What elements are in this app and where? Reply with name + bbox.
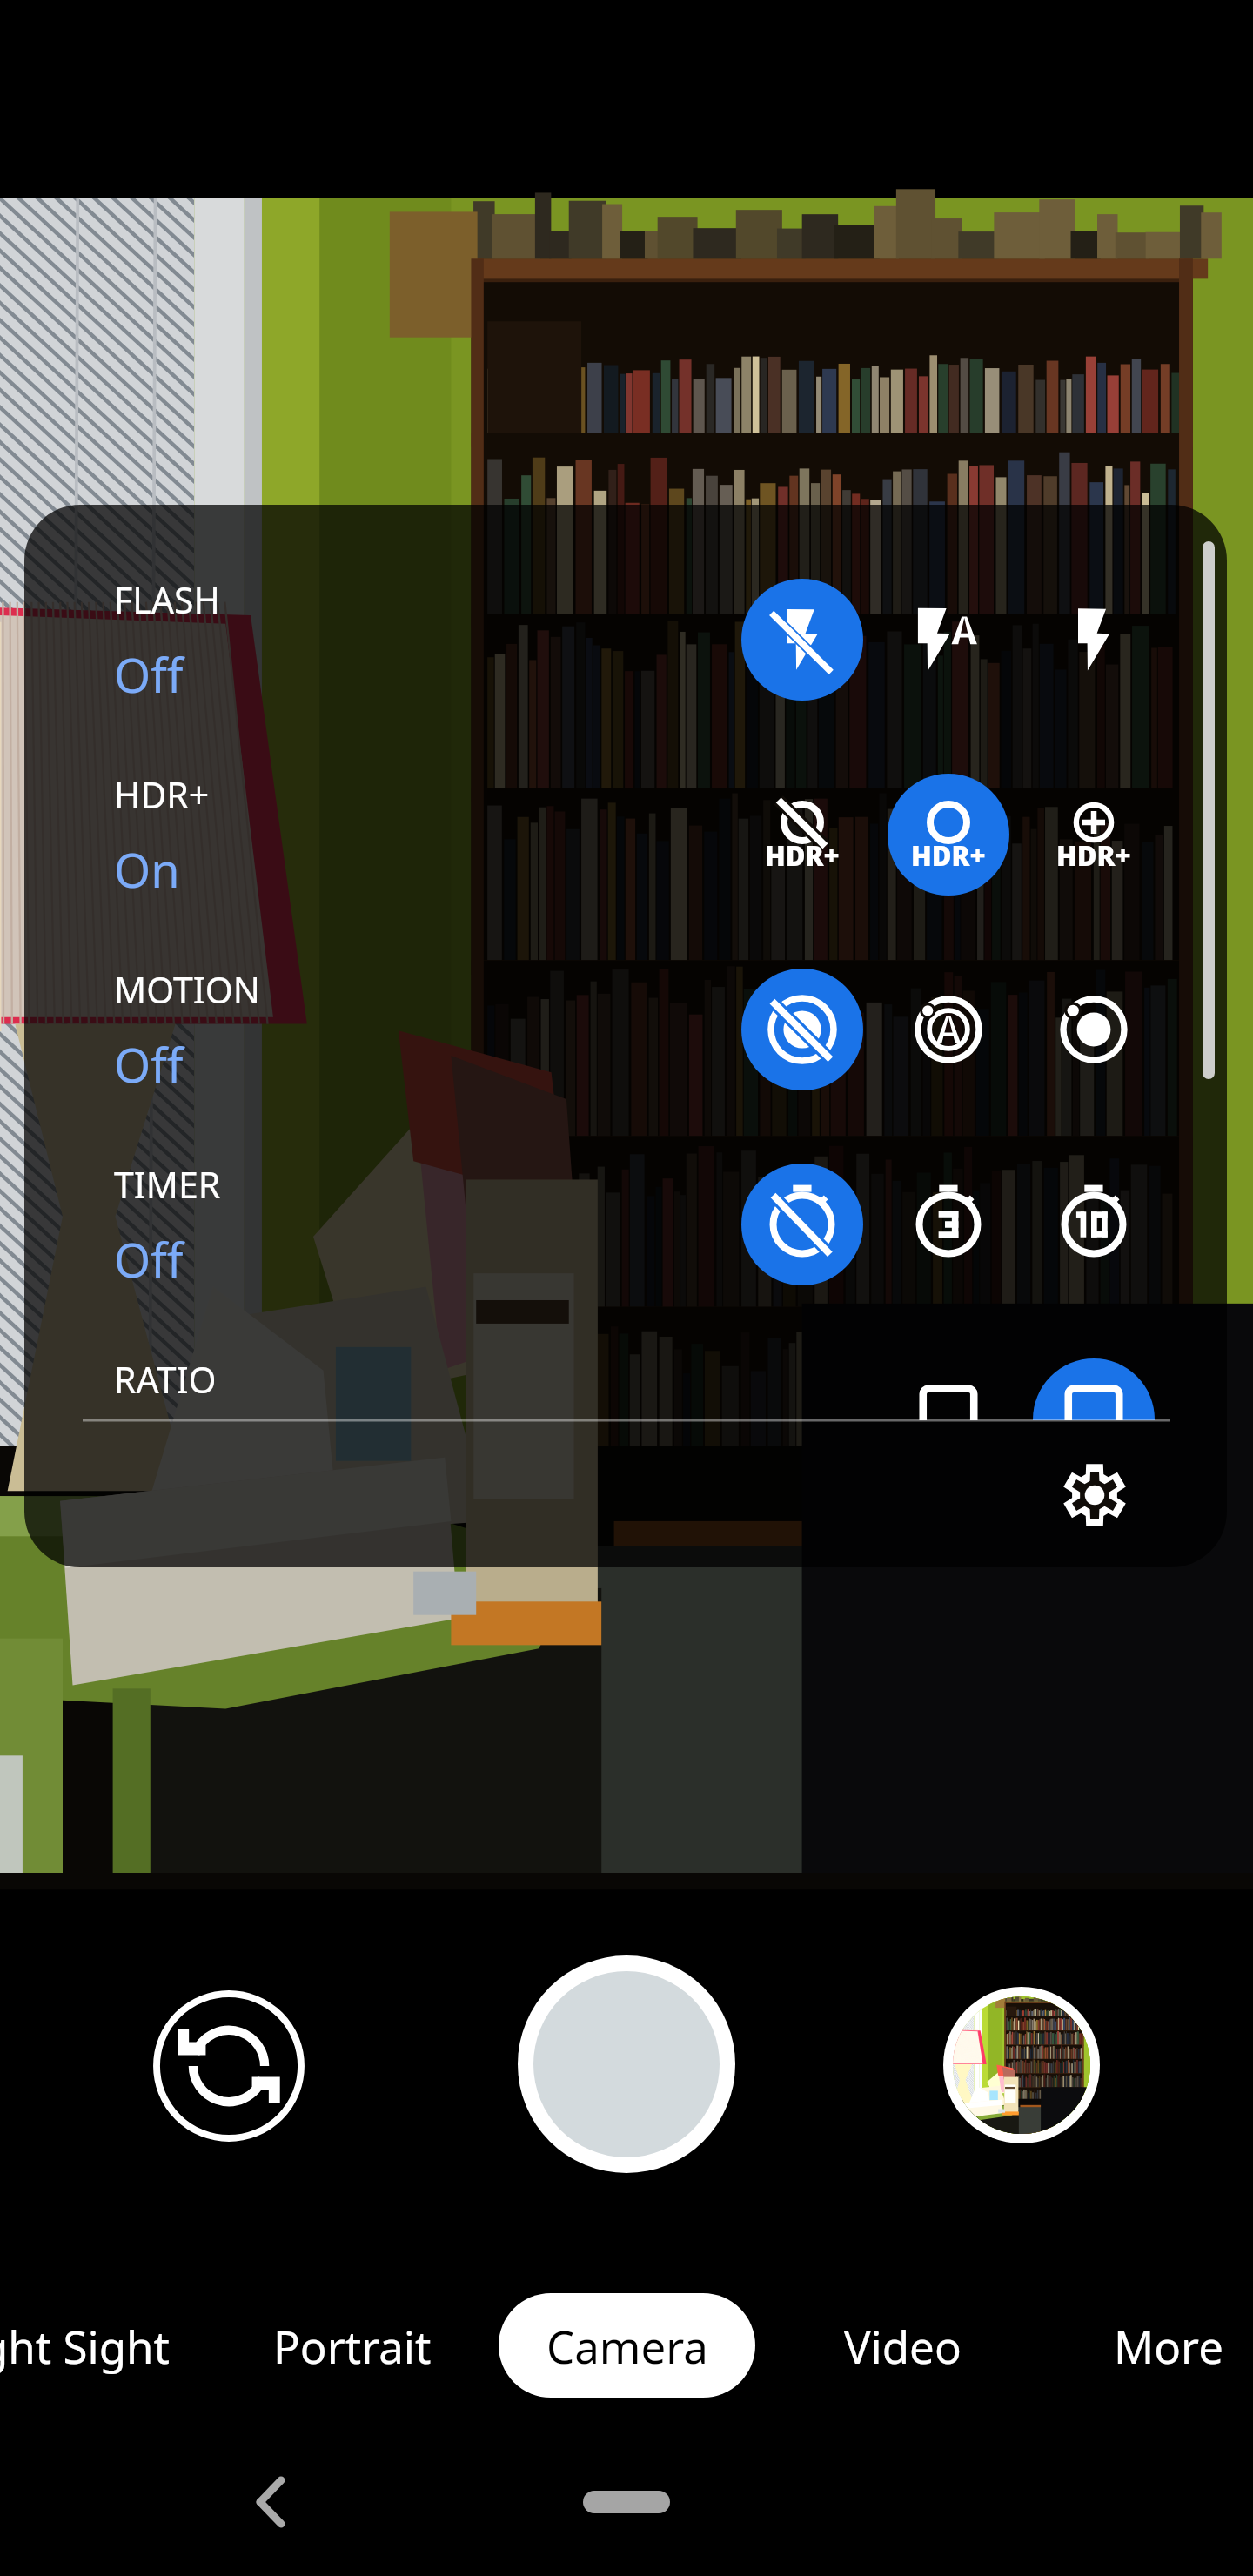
button[interactable]: Portrait [244,2293,461,2398]
staticText: HDR+ [911,837,986,874]
staticText: RATIO [114,1355,217,1404]
staticText: FLASH [114,575,220,624]
button[interactable]: Back [218,2450,322,2554]
button[interactable]: Home [583,2491,670,2513]
staticText: Portrait [273,2316,432,2376]
staticText: MOTION [114,965,260,1014]
button[interactable]: Gallery [943,1987,1100,2143]
button[interactable]: Switch camera [152,1989,305,2143]
staticText: Night Sight [0,2316,170,2376]
staticText: TIMER [114,1160,221,1209]
staticText: Off [114,1032,184,1097]
staticText: HDR+ [765,837,840,874]
button[interactable]: Night Sight [0,2293,183,2398]
button[interactable]: More [1073,2293,1253,2398]
button[interactable]: Camera [499,2293,755,2398]
staticText: Off [114,642,184,707]
staticText: HDR+ [1056,837,1131,874]
staticText: More [1114,2316,1223,2376]
staticText: HDR+ [114,770,210,819]
staticText: Camera [546,2316,708,2376]
staticText: Video [844,2316,962,2376]
staticText: On [114,837,180,902]
staticText: Off [114,1227,184,1291]
button[interactable]: Take photo [518,1955,735,2173]
button[interactable]: HDR+ [24,505,1227,1567]
button[interactable]: Video [807,2293,998,2398]
